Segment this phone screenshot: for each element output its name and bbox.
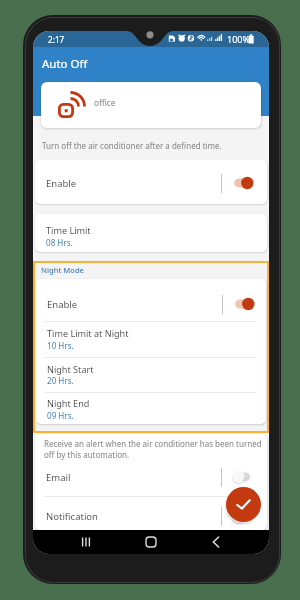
staticText: Receive an alert when the air conditione…	[44, 438, 262, 460]
button[interactable]: Notification	[35, 497, 267, 530]
button[interactable]: Night End	[36, 393, 266, 424]
button[interactable]: Email	[35, 462, 267, 496]
staticText: office	[94, 97, 116, 108]
staticText: 20 Hrs.	[47, 375, 74, 386]
staticText: Enable	[47, 298, 78, 311]
staticText: Email	[46, 471, 71, 484]
staticText: 08 Hrs.	[46, 237, 73, 248]
button[interactable]: Enable	[35, 160, 267, 204]
button[interactable]: Home	[139, 530, 163, 554]
staticText: Time Limit	[46, 224, 91, 236]
staticText: Auto Off	[42, 56, 88, 72]
staticText: 09 Hrs.	[47, 410, 74, 421]
staticText: Time Limit at Night	[47, 327, 129, 339]
button[interactable]: Night Start	[36, 358, 266, 392]
staticText: Night Start	[47, 363, 94, 375]
button[interactable]: Time Limit at Night	[36, 322, 266, 357]
staticText: Night End	[47, 397, 90, 409]
button[interactable]: Confirm	[226, 487, 261, 522]
button[interactable]: Recents	[74, 530, 98, 554]
staticText: 100%	[227, 33, 250, 45]
button[interactable]: office	[41, 82, 261, 128]
staticText: Notification	[46, 510, 98, 523]
staticText: Enable	[46, 177, 77, 190]
staticText: Night Mode	[41, 265, 84, 275]
staticText: Turn off the air conditioner after a def…	[42, 140, 222, 151]
button[interactable]: Back	[204, 530, 228, 554]
staticText: 2:17	[48, 34, 65, 45]
button[interactable]: Enable	[36, 279, 266, 321]
button[interactable]: Time Limit	[35, 214, 267, 252]
staticText: 10 Hrs.	[47, 340, 74, 351]
